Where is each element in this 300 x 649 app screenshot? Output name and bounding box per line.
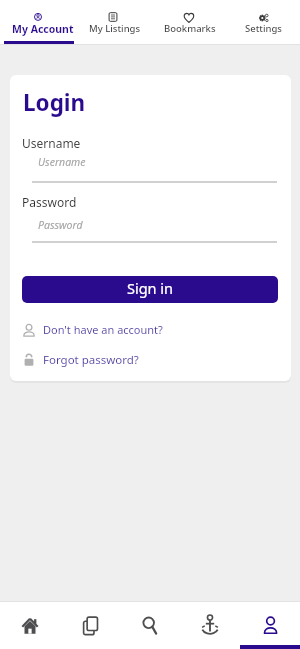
staticText: Forgot password? bbox=[43, 352, 139, 368]
staticText: Password bbox=[22, 194, 77, 210]
button[interactable]: Bookmarks bbox=[150, 0, 225, 44]
staticText: Password bbox=[38, 218, 83, 232]
staticText: Sign in bbox=[127, 278, 174, 298]
staticText: Don't have an account? bbox=[43, 322, 163, 337]
button[interactable] bbox=[180, 602, 240, 649]
staticText: My Account bbox=[12, 22, 74, 36]
button[interactable] bbox=[60, 602, 120, 649]
button[interactable]: My Listings bbox=[75, 0, 150, 44]
staticText: Bookmarks bbox=[164, 22, 216, 35]
staticText: Settings bbox=[245, 22, 282, 35]
button[interactable]: Settings bbox=[225, 0, 300, 44]
button[interactable]: Forgot password? bbox=[22, 352, 139, 368]
button[interactable] bbox=[120, 602, 180, 649]
staticText: Username bbox=[22, 135, 81, 151]
button[interactable]: My Account bbox=[0, 0, 75, 44]
button[interactable]: Sign in bbox=[22, 276, 278, 303]
staticText: Login bbox=[23, 87, 86, 118]
staticText: Username bbox=[38, 155, 86, 169]
button[interactable]: Don't have an account? bbox=[22, 322, 163, 337]
button[interactable] bbox=[0, 602, 60, 649]
button[interactable] bbox=[240, 602, 300, 649]
staticText: My Listings bbox=[89, 22, 141, 35]
